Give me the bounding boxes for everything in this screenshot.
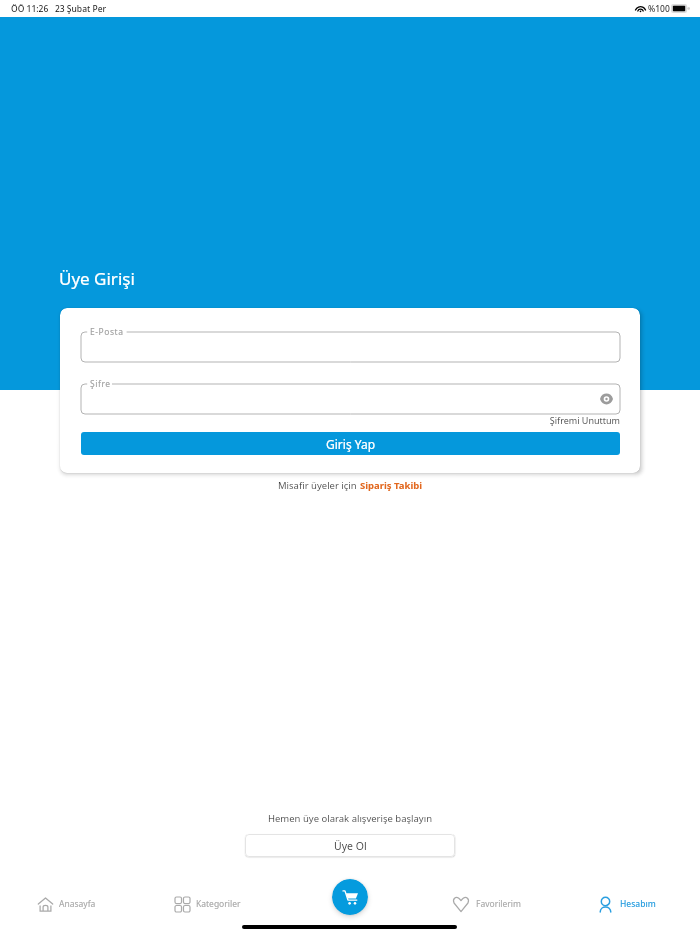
- staticText: E-Posta: [90, 326, 124, 338]
- staticText: %100: [648, 3, 670, 15]
- button[interactable]: Anasayfa: [30, 888, 104, 920]
- staticText: Şifremi Unuttum: [549, 414, 620, 426]
- staticText: Giriş Yap: [326, 436, 376, 452]
- staticText: Hesabım: [620, 898, 656, 910]
- button[interactable]: Şifreyi göster: [597, 390, 615, 408]
- button[interactable]: Sipariş Takibi: [360, 479, 423, 492]
- button[interactable]: Favorilerim: [445, 888, 529, 920]
- staticText: Kategoriler: [196, 898, 241, 910]
- button[interactable]: Kategoriler: [167, 888, 249, 920]
- staticText: Anasayfa: [59, 898, 96, 910]
- button[interactable]: Sepet: [332, 879, 368, 915]
- staticText: Favorilerim: [476, 898, 521, 910]
- staticText: Üye Ol: [334, 839, 367, 853]
- staticText: ÖÖ 11:26 23 Şubat Per: [11, 3, 107, 15]
- button[interactable]: Şifremi Unuttum: [490, 413, 620, 426]
- staticText: Üye Girişi: [59, 267, 135, 290]
- button[interactable]: Üye Ol: [245, 834, 455, 857]
- button[interactable]: Hesabım: [592, 888, 664, 920]
- button[interactable]: Giriş Yap: [81, 432, 620, 455]
- staticText: Hemen üye olarak alışverişe başlayın: [0, 812, 700, 825]
- staticText: Misafir üyeler için: [278, 479, 360, 492]
- staticText: Şifre: [90, 378, 111, 390]
